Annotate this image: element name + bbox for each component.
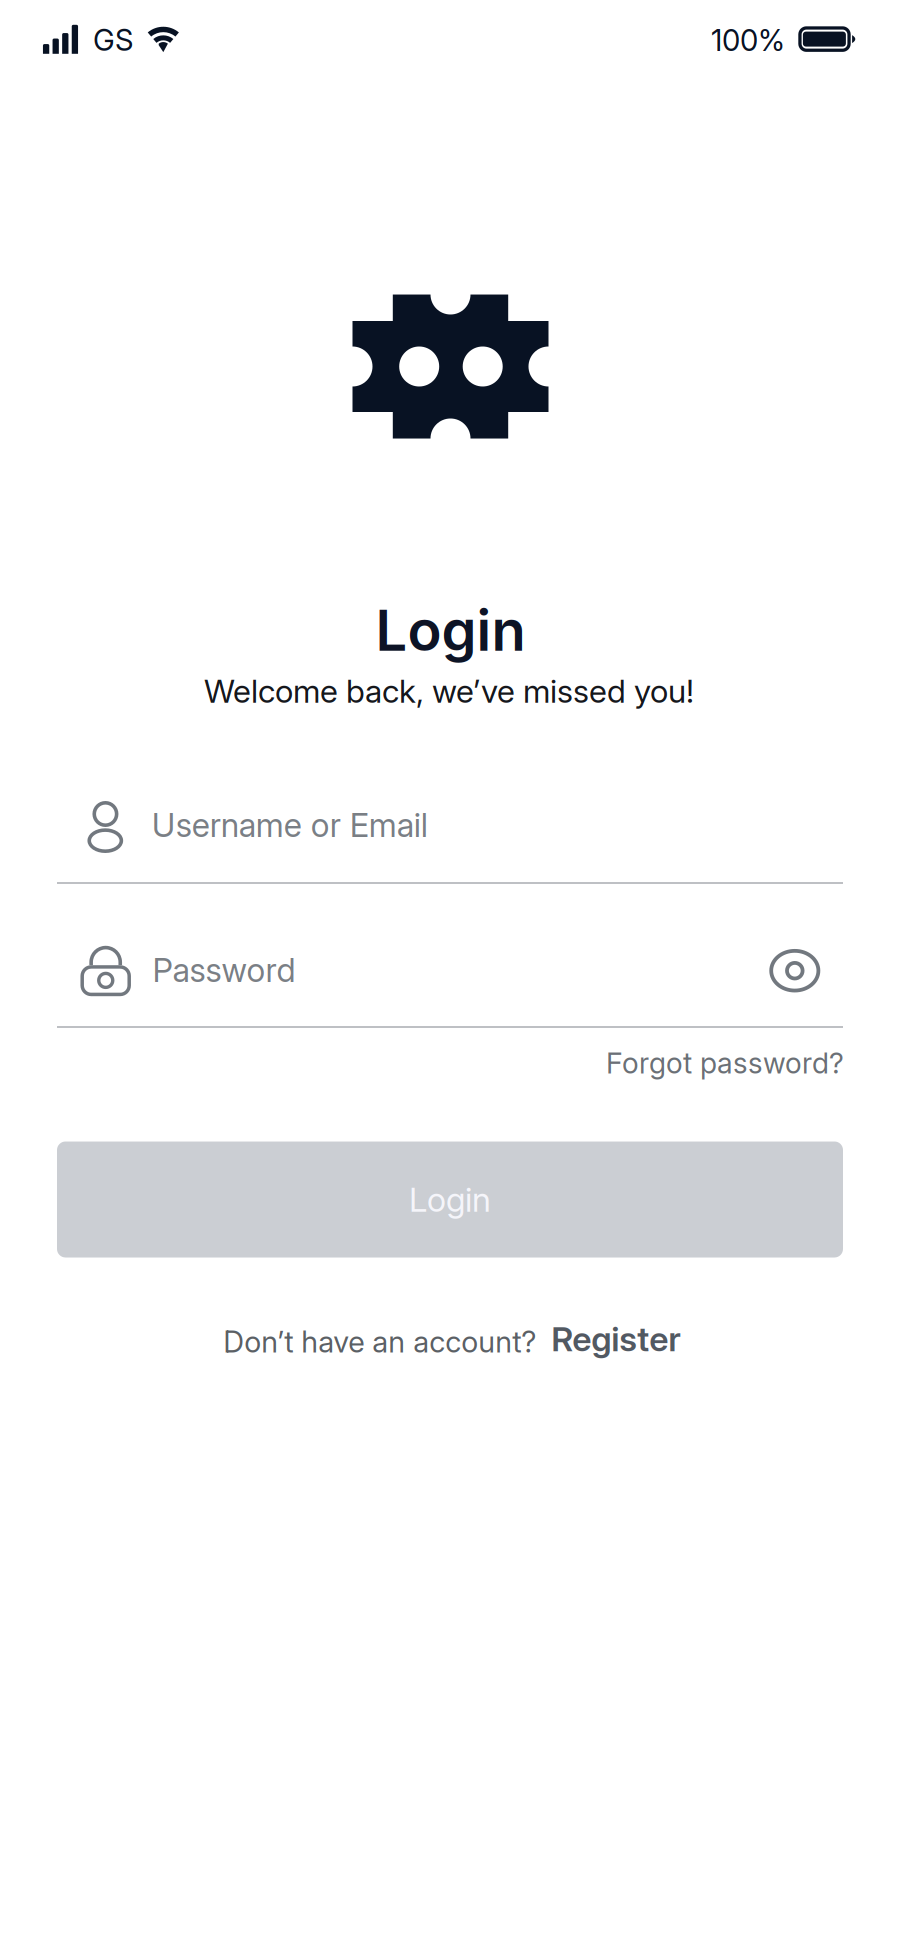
staticText: Login xyxy=(375,597,525,664)
staticText: Forgot password? xyxy=(606,1046,844,1080)
button[interactable]: Show password xyxy=(759,939,830,1002)
staticText: Don’t have an account? xyxy=(223,1324,536,1360)
staticText: 100% xyxy=(711,23,785,58)
staticText: Login xyxy=(409,1179,491,1220)
staticText: Register xyxy=(551,1318,681,1359)
staticText: Username or Email xyxy=(152,805,428,845)
staticText: Password xyxy=(152,950,295,990)
button[interactable]: Don’t have an account? xyxy=(217,1312,687,1365)
button[interactable]: Login xyxy=(57,1141,843,1257)
button[interactable]: Forgot password? xyxy=(600,1040,850,1086)
staticText: GS xyxy=(93,22,133,58)
staticText: Welcome back, we’ve missed you! xyxy=(204,672,694,710)
